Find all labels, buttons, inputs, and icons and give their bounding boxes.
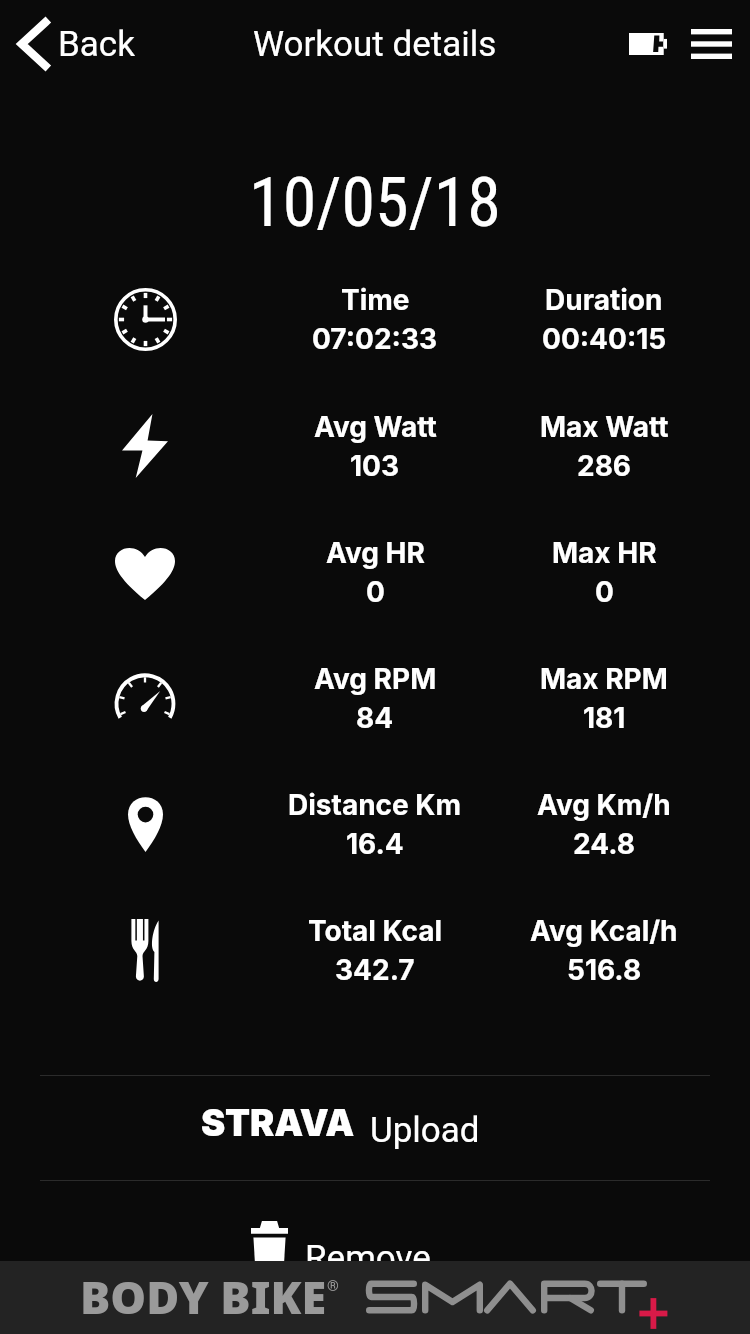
staticText: 84 bbox=[356, 701, 394, 735]
staticText: ® bbox=[327, 1277, 339, 1295]
staticText: 516.8 bbox=[567, 953, 642, 987]
staticText: 103 bbox=[350, 449, 400, 483]
staticText: Workout details bbox=[253, 24, 497, 65]
staticText: Avg Watt bbox=[314, 410, 437, 444]
staticText: 24.8 bbox=[573, 827, 635, 861]
staticText: Remove bbox=[305, 1238, 431, 1279]
staticText: 16.4 bbox=[346, 827, 404, 861]
staticText: Avg Kcal/h bbox=[530, 914, 678, 948]
button[interactable]: Remove bbox=[0, 1181, 750, 1334]
button[interactable]: Menu bbox=[679, 12, 741, 76]
staticText: 00:40:15 bbox=[542, 322, 667, 356]
staticText: 10/05/18 bbox=[0, 163, 750, 243]
staticText: Upload bbox=[370, 1110, 480, 1151]
staticText: 286 bbox=[577, 449, 632, 483]
staticText: 0 bbox=[366, 575, 385, 609]
button[interactable]: Back bbox=[0, 16, 151, 72]
staticText: BODY BIKE bbox=[80, 1266, 327, 1327]
staticText: Time bbox=[341, 283, 410, 317]
staticText: 07:02:33 bbox=[312, 322, 438, 356]
staticText: Distance Km bbox=[288, 788, 462, 822]
staticText: Total Kcal bbox=[308, 914, 443, 948]
other: Battery charging bbox=[620, 13, 674, 75]
staticText: Duration bbox=[545, 283, 663, 317]
staticText: Avg Km/h bbox=[537, 788, 671, 822]
staticText: Back bbox=[58, 24, 135, 65]
button[interactable]: STRAVA bbox=[0, 1071, 750, 1175]
staticText: Max Watt bbox=[540, 410, 669, 444]
staticText: Max HR bbox=[552, 536, 657, 570]
staticText: 342.7 bbox=[335, 953, 415, 987]
staticText: Max RPM bbox=[540, 662, 668, 696]
staticText: STRAVA bbox=[201, 1101, 355, 1145]
staticText: 181 bbox=[583, 701, 626, 735]
staticText: Avg RPM bbox=[314, 662, 437, 696]
staticText: Avg HR bbox=[326, 536, 425, 570]
staticText: 0 bbox=[595, 575, 614, 609]
